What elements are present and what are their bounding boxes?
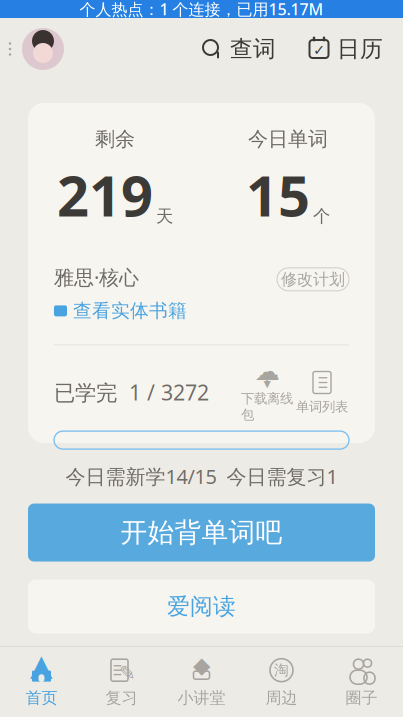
button[interactable]: ◆: [161, 647, 241, 717]
staticText: 今日单词: [248, 127, 328, 151]
staticText: 淘: [274, 661, 289, 679]
staticText: 周边: [265, 688, 297, 708]
staticText: 15: [246, 157, 310, 232]
button[interactable]: ✎: [81, 647, 161, 717]
staticText: 修改计划: [281, 269, 345, 289]
staticText: 日历: [337, 35, 383, 63]
button[interactable]: ▲: [1, 647, 81, 717]
staticText: ✓: [313, 42, 325, 58]
staticText: 今日需新学14/15 今日需复习1: [65, 463, 337, 490]
staticText: ▾: [263, 375, 270, 392]
staticText: 查看实体书籍: [73, 299, 187, 322]
button[interactable]: 菜单: [0, 29, 20, 69]
staticText: 开始背单词吧: [120, 516, 282, 549]
staticText: ▲: [30, 648, 53, 682]
staticText: 爱阅读: [167, 593, 236, 620]
staticText: 圈子: [345, 688, 377, 708]
button[interactable]: ✓: [302, 27, 389, 71]
staticText: 雅思·核心: [54, 264, 139, 290]
staticText: 219: [57, 157, 153, 232]
button[interactable]: 淘: [241, 647, 321, 717]
staticText: ☁: [254, 357, 279, 386]
staticText: 复习: [105, 688, 137, 708]
staticText: 剩余: [95, 127, 135, 151]
staticText: 单词列表: [296, 398, 348, 415]
button[interactable]: 爱阅读: [28, 580, 375, 634]
staticText: 查词: [230, 35, 276, 63]
button[interactable]: ☁: [239, 361, 295, 423]
staticText: ✎: [119, 662, 136, 684]
button[interactable]: 圈子: [321, 647, 401, 717]
button[interactable]: 开始背单词吧: [28, 504, 375, 562]
staticText: 小讲堂: [177, 688, 225, 708]
staticText: 个: [313, 206, 330, 227]
staticText: ◆: [193, 652, 210, 678]
staticText: 个人热点：1 个连接，已用15.17M: [79, 0, 323, 20]
staticText: 下载离线包: [241, 390, 293, 423]
button[interactable]: 个人头像: [20, 26, 66, 72]
staticText: 天: [156, 206, 173, 227]
button[interactable]: 修改计划: [277, 268, 349, 291]
staticText: 已学完 1 / 3272: [54, 378, 209, 406]
staticText: 首页: [25, 688, 57, 708]
button[interactable]: 单词列表: [295, 369, 349, 415]
button[interactable]: 查看实体书籍: [54, 299, 187, 322]
button[interactable]: 查词: [195, 27, 282, 71]
